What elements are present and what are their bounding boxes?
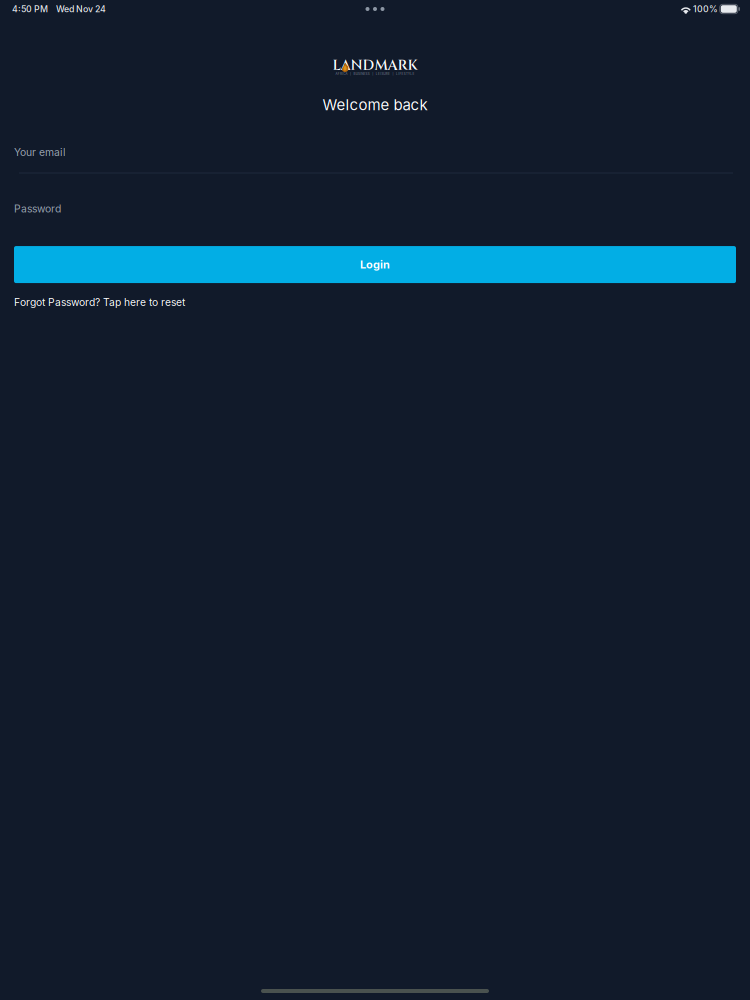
button[interactable]: Login: [14, 246, 736, 283]
staticText: Password: [14, 202, 61, 215]
staticText: Welcome back: [322, 96, 427, 114]
staticText: Forgot Password? Tap here to reset: [14, 296, 185, 309]
staticText: LANDMARK: [332, 56, 417, 75]
staticText: Your email: [14, 146, 66, 158]
staticText: Wed Nov 24: [56, 4, 106, 14]
button[interactable]: Forgot Password? Tap here to reset: [0, 296, 750, 309]
staticText: AFRICA | BUSINESS | LEISURE | LIFESTYLE: [335, 72, 414, 76]
staticText: 100%: [693, 4, 718, 14]
staticText: Login: [360, 258, 390, 271]
staticText: 4:50 PM: [12, 4, 48, 14]
